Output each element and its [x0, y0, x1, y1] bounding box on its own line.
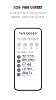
staticText: TR33 0006 **** [22, 70, 36, 73]
staticText: Ad, IBAN veya telefon [17, 38, 38, 40]
staticText: Son Gönderilenler [17, 51, 34, 54]
staticText: Elif [30, 47, 32, 49]
staticText: Mert [23, 47, 28, 49]
staticText: Mert Demir [22, 59, 35, 62]
staticText: Ayşe Yılmaz [22, 55, 34, 57]
staticText: saniyeler içinde para gönder. [11, 16, 45, 19]
staticText: Elif Kaya [22, 63, 31, 66]
staticText: TR33 0006 **** [22, 57, 36, 59]
staticText: Can [35, 47, 38, 49]
staticText: Para Gönder [18, 32, 37, 35]
staticText: Ayşe [17, 47, 21, 49]
staticText: TR33 0006 **** [22, 75, 36, 77]
staticText: Zeynep Ak [22, 72, 32, 75]
staticText: Can Aydın [22, 68, 32, 70]
staticText: 7/24 Para Gönder [13, 5, 43, 10]
staticText: TR33 0006 **** [22, 66, 36, 68]
staticText: TR33 0006 **** [22, 61, 36, 64]
staticText: Dilediğin an, dilediğin kişiye [10, 12, 46, 15]
